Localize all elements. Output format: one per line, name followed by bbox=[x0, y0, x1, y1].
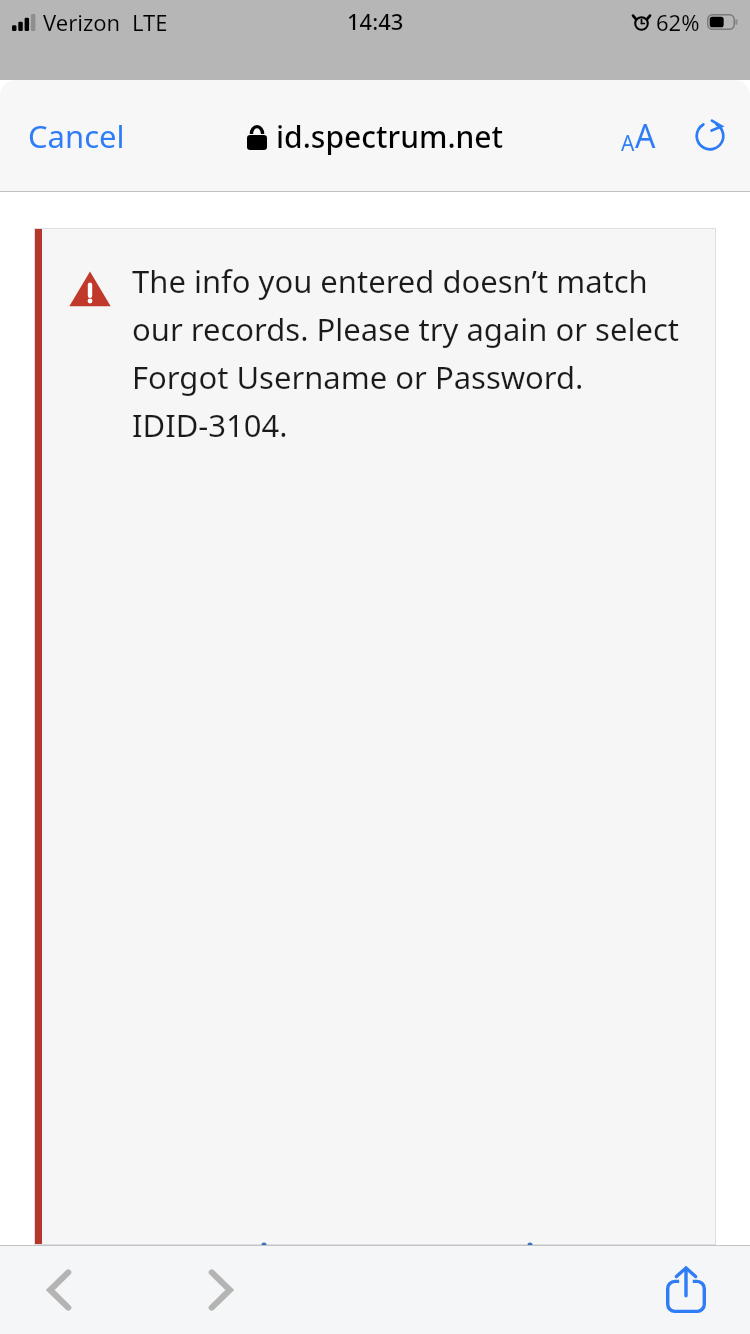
button[interactable]: Text size bbox=[613, 104, 664, 168]
button[interactable]: Forward bbox=[196, 1256, 246, 1324]
staticText: Cancel bbox=[28, 115, 125, 157]
button[interactable]: Cancel bbox=[14, 105, 139, 167]
button[interactable]: Reload bbox=[686, 112, 734, 160]
staticText: Verizon bbox=[43, 7, 121, 37]
staticText: A bbox=[621, 129, 635, 158]
staticText: id.spectrum.net bbox=[276, 116, 504, 157]
staticText: The info you entered doesn’t match our r… bbox=[132, 260, 696, 446]
button[interactable]: Share bbox=[656, 1256, 716, 1324]
staticText: 62% bbox=[656, 7, 700, 37]
staticText: LTE bbox=[132, 7, 168, 37]
staticText: A bbox=[635, 114, 656, 158]
staticText: 14:43 bbox=[347, 6, 404, 36]
button[interactable]: Back bbox=[34, 1256, 84, 1324]
